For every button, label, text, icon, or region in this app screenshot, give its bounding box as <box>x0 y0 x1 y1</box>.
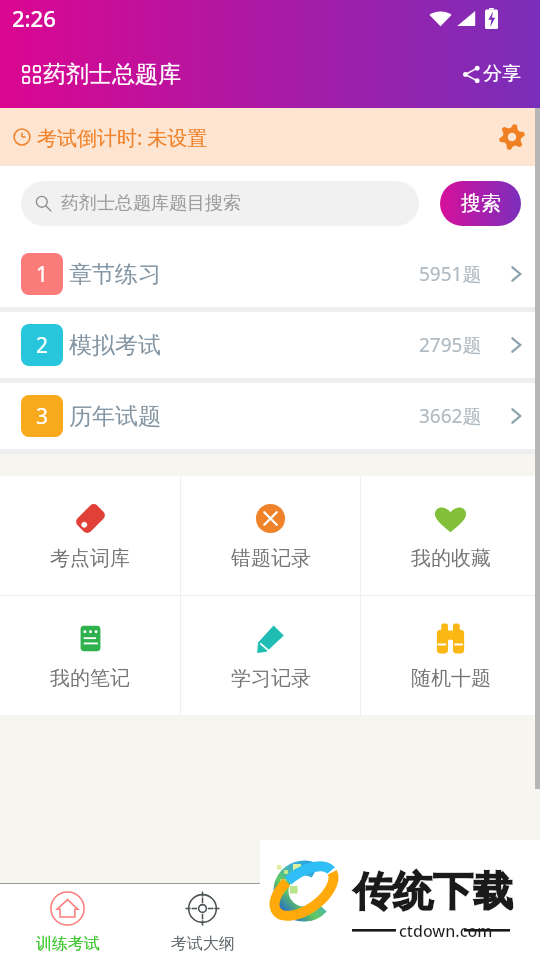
button[interactable]: 分享 <box>452 52 531 96</box>
staticText: 分享 <box>483 62 521 86</box>
button[interactable]: 学习记录 <box>181 596 360 715</box>
button[interactable]: 错题记录 <box>181 476 360 595</box>
button[interactable]: Settings <box>488 113 536 161</box>
button[interactable]: 训练考试 <box>0 884 135 960</box>
staticText: 传统下载 <box>353 866 513 916</box>
button[interactable]: 药剂士总题库题目搜索 <box>21 181 419 226</box>
staticText: 错题记录 <box>231 546 311 571</box>
staticText: ctdown.com <box>399 920 493 942</box>
button[interactable]: 我的错题 <box>270 884 405 960</box>
staticText: 我的笔记 <box>50 666 130 691</box>
staticText: 我的收藏 <box>411 546 491 571</box>
button[interactable]: 考试大纲 <box>135 884 270 960</box>
button[interactable]: 搜索 <box>440 181 521 226</box>
button[interactable]: 1 <box>0 241 540 307</box>
button[interactable]: 个人中心 <box>405 884 540 960</box>
staticText: 搜索 <box>461 191 501 216</box>
staticText: 2:26 <box>12 3 56 33</box>
staticText: 1 <box>36 260 49 289</box>
staticText: 训练考试 <box>36 934 100 954</box>
staticText: 模拟考试 <box>69 331 161 360</box>
button[interactable]: 随机十题 <box>361 596 540 715</box>
staticText: 历年试题 <box>69 402 161 431</box>
staticText: 章节练习 <box>69 260 161 289</box>
staticText: 5951题 <box>419 261 482 287</box>
staticText: 考试倒计时: 未设置 <box>37 124 208 151</box>
staticText: 学习记录 <box>231 666 311 691</box>
button[interactable]: 考点词库 <box>0 476 180 595</box>
staticText: 2 <box>36 331 49 360</box>
button[interactable]: 3 <box>0 383 540 449</box>
staticText: 3662题 <box>419 403 482 429</box>
button[interactable]: 我的笔记 <box>0 596 180 715</box>
button[interactable]: 我的收藏 <box>361 476 540 595</box>
staticText: 3 <box>36 402 49 431</box>
staticText: 考点词库 <box>50 546 130 571</box>
staticText: 个人中心 <box>441 934 505 954</box>
button[interactable]: 2 <box>0 312 540 378</box>
staticText: 2795题 <box>419 332 482 358</box>
staticText: 药剂士总题库 <box>43 60 181 89</box>
staticText: 考试大纲 <box>171 934 235 954</box>
staticText: 随机十题 <box>411 666 491 691</box>
staticText: 药剂士总题库题目搜索 <box>61 192 241 215</box>
